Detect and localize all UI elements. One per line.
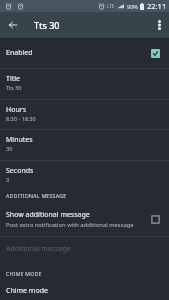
button[interactable]: Minutes [0,130,169,160]
staticText: Enabled [6,48,33,58]
staticText: 30 [6,145,13,152]
button[interactable]: Enabled [0,38,169,68]
button[interactable]: Additional message [0,237,169,262]
staticText: Seconds [6,166,34,176]
button[interactable]: Show additional message [0,203,169,236]
button[interactable]: More options [149,12,169,38]
staticText: 90% [127,3,138,10]
staticText: Minutes [6,135,33,145]
button[interactable]: Chime mode [0,281,169,300]
button[interactable]: Hours [0,100,169,129]
staticText: Additional message [6,244,71,254]
staticText: Tts 30 [6,84,22,91]
button[interactable]: Seconds [0,161,169,190]
staticText: LTE [107,3,115,9]
staticText: Title [6,74,20,84]
staticText: ADDITIONAL MESSAGE [6,192,67,199]
staticText: 8:30 - 18:30 [6,115,36,122]
staticText: Hours [6,105,26,115]
staticText: Tts 30 [34,19,60,31]
button[interactable]: Navigate up [0,12,26,38]
staticText: 22:11 [147,1,167,11]
staticText: CHIME MODE [6,270,42,277]
staticText: Show additional message [6,210,90,220]
button[interactable]: Title [0,69,169,99]
staticText: 3 [6,176,10,183]
staticText: Post extra notification with additional … [6,221,134,229]
staticText: Chime mode [6,286,48,296]
